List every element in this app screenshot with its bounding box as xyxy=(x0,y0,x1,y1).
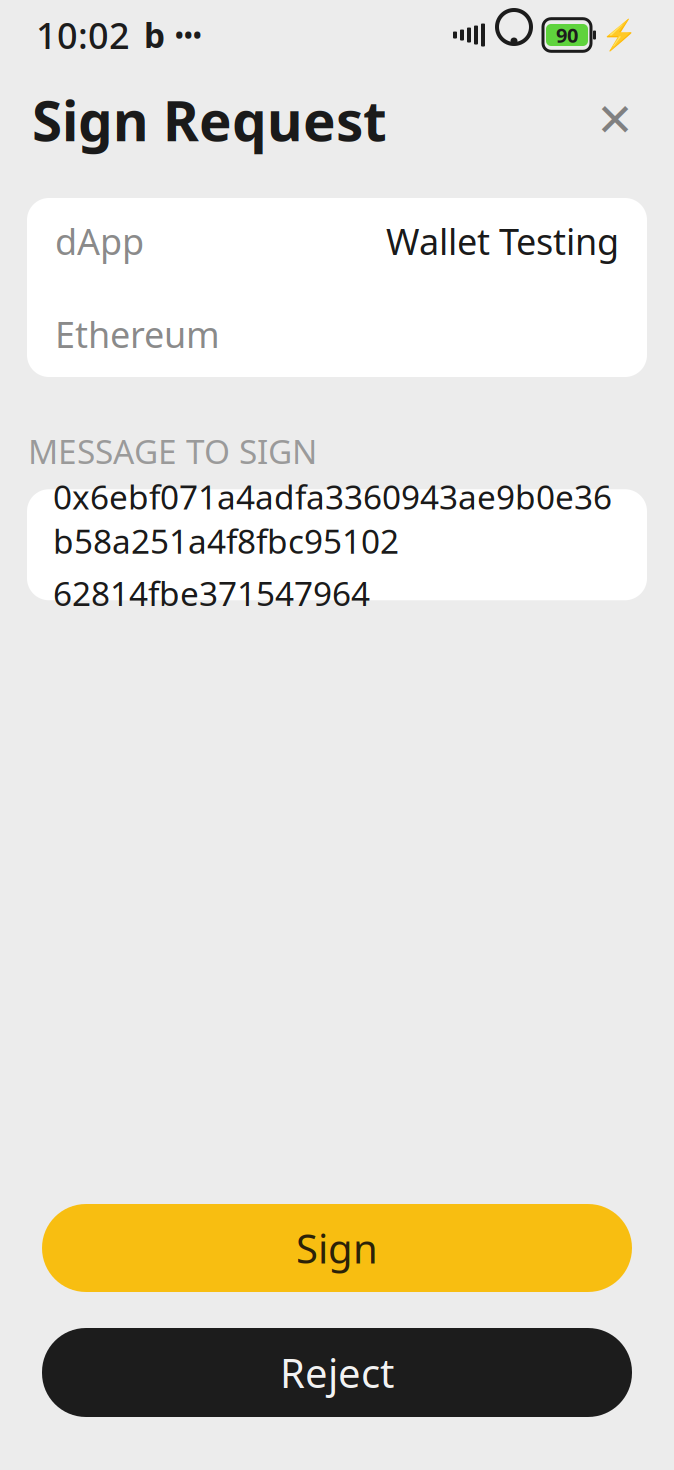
staticText: ••• xyxy=(175,20,202,50)
staticText: dApp xyxy=(55,217,144,265)
staticText: 0x6ebf071a4adfa3360943ae9b0e36b58a251a4f… xyxy=(53,474,612,563)
staticText: 62814fbe371547964 xyxy=(53,571,370,615)
staticText: Sign xyxy=(296,1221,378,1274)
staticText: 10:02 xyxy=(36,11,130,59)
staticText: Ethereum xyxy=(55,310,220,358)
staticText: b xyxy=(144,13,165,57)
staticText: 90 xyxy=(556,22,578,48)
staticText: MESSAGE TO SIGN xyxy=(28,429,317,473)
button[interactable]: Close xyxy=(588,93,642,147)
button[interactable]: Reject xyxy=(42,1328,632,1417)
button[interactable]: Sign xyxy=(42,1204,632,1292)
staticText: ✕ xyxy=(596,94,634,146)
staticText: Wallet Testing xyxy=(386,217,619,265)
staticText: Sign Request xyxy=(32,84,387,156)
staticText: Reject xyxy=(280,1346,394,1399)
staticText: ⚡ xyxy=(601,18,638,52)
